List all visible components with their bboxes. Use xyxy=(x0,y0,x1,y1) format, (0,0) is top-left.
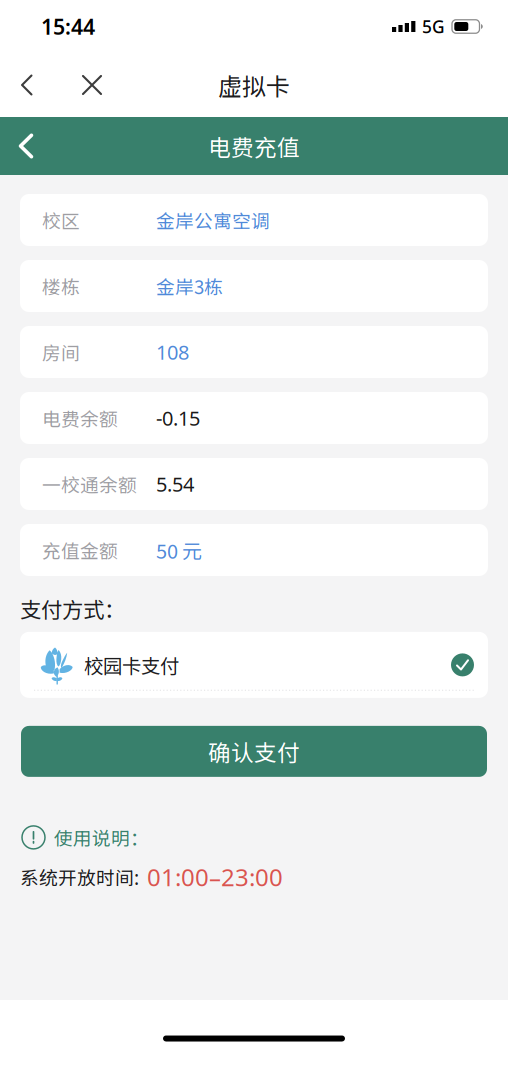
staticText: 15:44 xyxy=(41,12,95,41)
staticText: 50 元 xyxy=(156,535,202,564)
staticText: 108 xyxy=(156,339,189,365)
staticText: 校园卡支付 xyxy=(84,651,179,679)
button[interactable]: 校园卡支付 xyxy=(20,632,488,698)
staticText: 虚拟卡 xyxy=(218,68,290,102)
button[interactable]: 确认支付 xyxy=(21,726,487,777)
staticText: 一校通余额 xyxy=(42,470,137,497)
staticText: 校区 xyxy=(42,206,80,233)
staticText: 支付方式： xyxy=(20,593,125,624)
staticText: 系统开放时间: xyxy=(20,863,139,890)
staticText: 01:00–23:00 xyxy=(147,861,283,893)
staticText: 金岸公寓空调 xyxy=(156,206,270,233)
staticText: 5.54 xyxy=(156,471,194,497)
staticText: 使用说明： xyxy=(54,824,149,851)
staticText: 确认支付 xyxy=(208,735,300,768)
staticText: 金岸3栋 xyxy=(156,272,223,299)
button[interactable]: Close xyxy=(69,61,128,109)
staticText: 楼栋 xyxy=(42,272,80,299)
staticText: -0.15 xyxy=(156,405,200,431)
staticText: 充值金额 xyxy=(42,536,118,563)
staticText: 电费充值 xyxy=(208,130,300,162)
staticText: 5G xyxy=(422,15,445,38)
staticText: 电费余额 xyxy=(42,404,118,431)
staticText: 房间 xyxy=(42,338,80,365)
button[interactable]: Back xyxy=(0,61,69,109)
button[interactable]: Back xyxy=(4,122,48,170)
